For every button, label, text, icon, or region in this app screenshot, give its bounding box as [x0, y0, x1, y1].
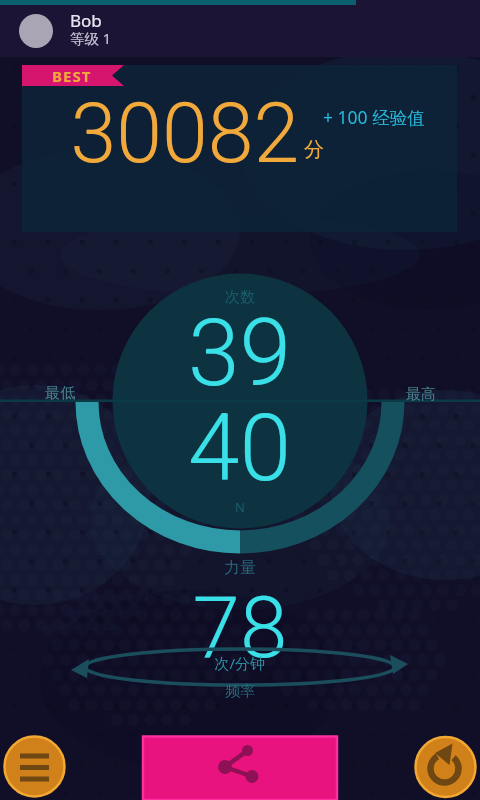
button[interactable] [415, 736, 476, 797]
button[interactable] [4, 736, 65, 797]
button[interactable] [143, 736, 337, 800]
button[interactable] [10, 8, 210, 54]
button[interactable] [22, 65, 457, 232]
